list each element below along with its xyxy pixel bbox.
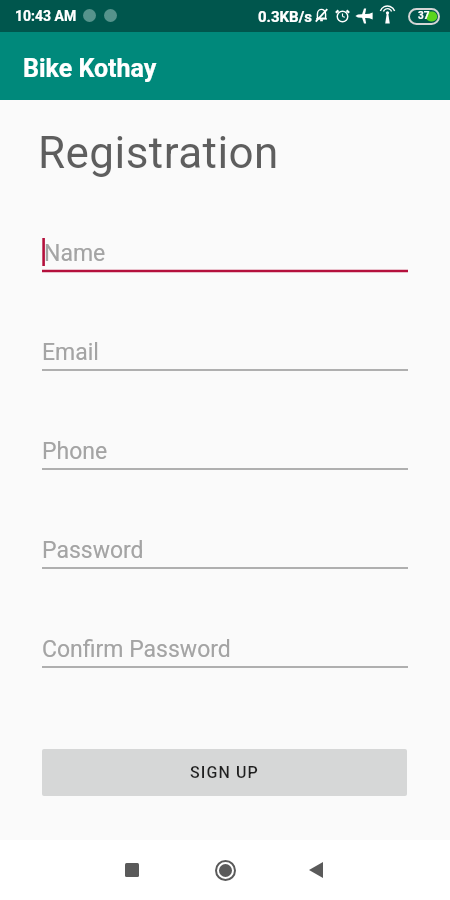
staticText: Phone — [42, 438, 108, 465]
button[interactable]: Confirm Password — [42, 609, 408, 668]
staticText: Email — [42, 339, 99, 366]
button[interactable]: Home — [201, 846, 249, 894]
button[interactable]: Recent apps — [108, 846, 156, 894]
staticText: SIGN UP — [190, 763, 259, 782]
staticText: 0.3KB/s — [258, 8, 312, 26]
staticText: Name — [44, 240, 106, 267]
staticText: 10:43 AM — [15, 8, 77, 24]
button[interactable]: SIGN UP — [42, 749, 407, 796]
button[interactable]: Back — [292, 846, 340, 894]
staticText: Bike Kothay — [23, 54, 157, 83]
button[interactable]: Email — [42, 312, 408, 371]
staticText: 37 — [418, 10, 430, 22]
button[interactable]: Password — [42, 510, 408, 569]
staticText: Confirm Password — [42, 636, 231, 663]
button[interactable]: Name — [42, 213, 408, 272]
button[interactable]: Phone — [42, 411, 408, 470]
staticText: Registration — [38, 127, 279, 179]
staticText: Password — [42, 537, 144, 564]
